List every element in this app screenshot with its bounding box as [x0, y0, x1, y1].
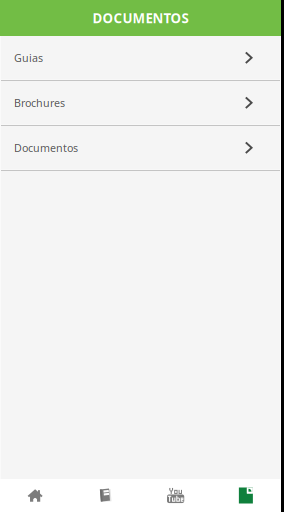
staticText: Brochures — [14, 96, 65, 110]
button[interactable]: Catalogo — [70, 488, 140, 503]
button[interactable]: Inicio — [0, 489, 70, 502]
button[interactable]: YouTube — [140, 488, 211, 503]
staticText: Documentos — [14, 141, 78, 155]
button[interactable]: Documentos — [211, 487, 281, 503]
staticText: Guias — [14, 51, 43, 65]
button[interactable]: Brochures — [1, 81, 280, 126]
button[interactable]: Guias — [1, 36, 280, 81]
button[interactable]: Documentos — [1, 126, 280, 171]
staticText: DOCUMENTOS — [92, 9, 188, 27]
